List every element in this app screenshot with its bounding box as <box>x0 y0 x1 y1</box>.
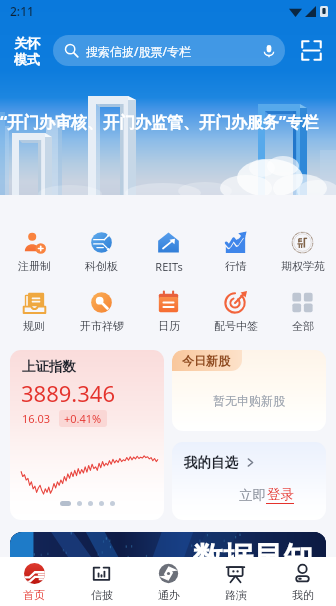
staticText: 通办 <box>158 588 180 602</box>
staticText: “开门办审核、开门办监管、开门办服务”专栏 <box>0 111 319 133</box>
staticText: 16.03 <box>22 411 51 426</box>
button[interactable]: 扫一扫 <box>301 40 322 61</box>
button[interactable]: 我的自选 <box>172 442 326 520</box>
staticText: 注册制 <box>18 259 51 273</box>
button[interactable]: 信披 <box>68 557 135 606</box>
button[interactable]: 规则 <box>0 291 68 333</box>
staticText: 开市祥锣 <box>80 319 124 333</box>
button[interactable]: 路演 <box>202 557 269 606</box>
staticText: 行情 <box>225 259 247 273</box>
button[interactable]: 期权学苑 <box>269 231 336 273</box>
staticText: 首页 <box>23 588 45 602</box>
staticText: 期权学苑 <box>281 259 325 273</box>
staticText: 搜索信披/股票/专栏 <box>86 43 191 59</box>
button[interactable]: 行情 <box>202 231 269 273</box>
button[interactable]: 全部 <box>269 291 336 333</box>
staticText: 3889.346 <box>21 378 115 408</box>
button[interactable]: 通办 <box>135 557 202 606</box>
button[interactable]: 数据早知道 <box>10 532 326 602</box>
button[interactable]: REITs <box>135 231 202 274</box>
staticText: 日历 <box>158 319 180 333</box>
staticText: 登录 <box>267 486 294 503</box>
staticText: 规则 <box>23 319 45 333</box>
staticText: 关怀 <box>14 35 40 51</box>
staticText: 信披 <box>91 588 113 602</box>
staticText: 科创板 <box>85 259 118 273</box>
staticText: 上证指数 <box>22 358 76 375</box>
button[interactable]: 搜索信披/股票/专栏 <box>53 35 285 66</box>
staticText: 模式 <box>14 51 40 66</box>
button[interactable]: 配号中签 <box>202 291 269 333</box>
button[interactable]: 开市祥锣 <box>68 291 135 333</box>
staticText: 2:11 <box>10 3 34 19</box>
staticText: 路演 <box>225 588 247 602</box>
button[interactable]: 注册制 <box>0 231 68 273</box>
staticText: 暂无申购新股 <box>213 393 285 408</box>
staticText: +0.41% <box>64 411 102 426</box>
button[interactable]: 今日新股 <box>172 350 326 431</box>
staticText: REITs <box>155 259 183 274</box>
button[interactable]: 上证指数 <box>10 350 164 520</box>
staticText: 立即 <box>239 487 266 504</box>
button[interactable]: 科创板 <box>68 231 135 273</box>
staticText: 我的自选 <box>184 454 238 471</box>
staticText: 全部 <box>292 319 314 333</box>
button[interactable]: 首页 <box>0 557 68 606</box>
staticText: 配号中签 <box>214 319 258 333</box>
button[interactable]: 我的 <box>269 557 336 606</box>
staticText: 我的 <box>292 588 314 602</box>
staticText: 今日新股 <box>182 353 230 368</box>
staticText: 数据早知道 <box>193 539 326 577</box>
button[interactable]: 关怀 <box>0 35 53 66</box>
button[interactable]: 日历 <box>135 291 202 333</box>
